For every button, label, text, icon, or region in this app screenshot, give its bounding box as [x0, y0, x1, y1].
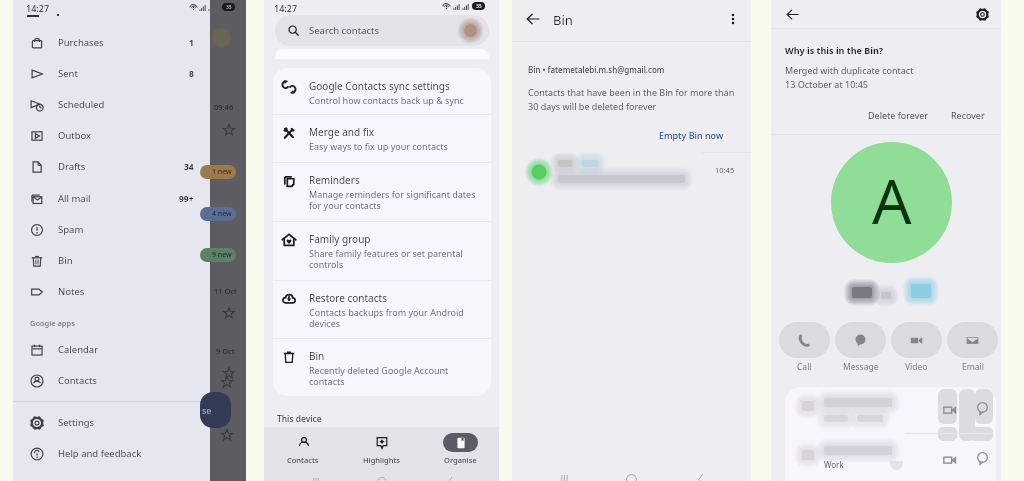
staticText: Contacts that have been in the Bin for m… [528, 86, 735, 113]
staticText: Help and feedback [58, 447, 142, 460]
button[interactable]: Outbox [13, 120, 210, 151]
button[interactable]: Email [947, 322, 998, 373]
button[interactable]: Spam [13, 214, 210, 245]
staticText: 10:45 [715, 165, 735, 175]
staticText: Recently deleted Google Account contacts [309, 364, 449, 388]
staticText: Bin [309, 349, 325, 363]
button[interactable]: Google Contacts sync settings [273, 68, 491, 114]
button[interactable]: Contacts [264, 427, 342, 465]
staticText: Work [824, 459, 844, 470]
staticText: Manage reminders for significant dates f… [309, 188, 476, 212]
staticText: 4 new [212, 209, 232, 219]
staticText: 09:46 [214, 102, 234, 112]
staticText: Organise [444, 455, 477, 465]
staticText: All mail [58, 192, 91, 205]
staticText: This device [277, 413, 322, 425]
staticText: Why is this in the Bin? [785, 44, 884, 56]
button[interactable]: Reminders [273, 162, 491, 221]
staticText: Purchases [58, 36, 104, 49]
staticText: 1 [189, 37, 194, 49]
staticText: Message [843, 361, 879, 373]
staticText: se [202, 404, 212, 416]
button[interactable]: Settings [13, 407, 210, 438]
staticText: Outbox [58, 129, 92, 142]
staticText: Google apps [30, 318, 75, 328]
staticText: 9 new [212, 250, 232, 260]
staticText: Family group [309, 232, 371, 246]
staticText: Bin • fatemetalebi.m.sh@gmail.com [528, 64, 665, 75]
staticText: 11 Oct [214, 286, 237, 296]
button[interactable]: Family group [273, 221, 491, 280]
staticText: Recover [951, 109, 985, 121]
button[interactable]: Delete forever [865, 107, 932, 123]
staticText: Spam [58, 223, 84, 236]
staticText: Search contacts [309, 24, 380, 37]
button[interactable]: Video [891, 322, 942, 373]
button[interactable]: Purchases [13, 27, 210, 58]
staticText: Settings [58, 416, 95, 429]
staticText: Highlights [363, 455, 400, 465]
button[interactable]: Bin [13, 245, 210, 276]
button[interactable]: Highlights [342, 427, 420, 465]
staticText: Notes [58, 285, 85, 298]
staticText: Restore contacts [309, 291, 387, 305]
staticText: A [872, 158, 912, 242]
staticText: Reminders [309, 173, 360, 187]
staticText: 35 [226, 4, 232, 11]
button[interactable]: Scheduled [13, 89, 210, 120]
button[interactable]: Back [522, 8, 544, 30]
staticText: Delete forever [868, 109, 929, 121]
button[interactable]: Organise [421, 427, 499, 465]
staticText: Empty Bin now [659, 129, 724, 141]
staticText: 9 Oct [216, 346, 235, 356]
button[interactable]: Empty Bin now [656, 127, 727, 143]
staticText: Bin [553, 11, 573, 29]
staticText: 99+ [179, 193, 194, 205]
button[interactable]: Contacts [13, 365, 210, 396]
staticText: Contacts backups from your Android devic… [309, 306, 464, 330]
staticText: Google Contacts sync settings [309, 79, 450, 93]
staticText: Drafts [58, 160, 86, 173]
staticText: Merge and fix [309, 125, 374, 139]
button[interactable]: Calendar [13, 334, 210, 365]
button[interactable]: Compose [200, 392, 231, 428]
staticText: Easy ways to fix up your contacts [309, 140, 448, 152]
staticText: 14:27 [26, 2, 50, 14]
staticText: Video [905, 361, 928, 373]
staticText: Merged with duplicate contact [785, 64, 914, 76]
staticText: 34 [184, 161, 194, 173]
staticText: 14:27 [274, 2, 298, 14]
staticText: Calendar [58, 343, 99, 356]
button[interactable]: Merge and fix [273, 114, 491, 163]
staticText: 35 [476, 3, 482, 10]
button[interactable]: Back [781, 3, 803, 25]
staticText: Share family features or set parental co… [309, 247, 463, 271]
button[interactable]: All mail [13, 183, 210, 214]
staticText: Scheduled [58, 98, 105, 111]
staticText: Call [797, 361, 812, 373]
staticText: 8 [189, 68, 194, 80]
staticText: Sent [58, 67, 78, 80]
button[interactable]: Help and feedback [13, 438, 210, 469]
button[interactable]: More options [722, 8, 744, 30]
staticText: Email [962, 361, 984, 373]
staticText: Bin [58, 254, 73, 267]
button[interactable]: Sent [13, 58, 210, 89]
staticText: 1 new [212, 167, 232, 177]
staticText: 13 October at 10:45 [785, 78, 868, 90]
button[interactable]: Drafts [13, 151, 210, 182]
staticText: Contacts [58, 374, 97, 387]
button[interactable]: Settings [971, 3, 993, 25]
button[interactable]: Search contacts [275, 15, 489, 46]
staticText: Control how contacts back up & sync [309, 94, 464, 106]
button[interactable]: Recover [948, 107, 988, 123]
button[interactable]: Call [779, 322, 830, 373]
staticText: Contacts [287, 455, 319, 465]
button[interactable]: Message [835, 322, 886, 373]
button[interactable]: Restore contacts [273, 280, 491, 338]
button[interactable]: Bin [273, 338, 491, 396]
button[interactable]: Notes [13, 276, 210, 307]
